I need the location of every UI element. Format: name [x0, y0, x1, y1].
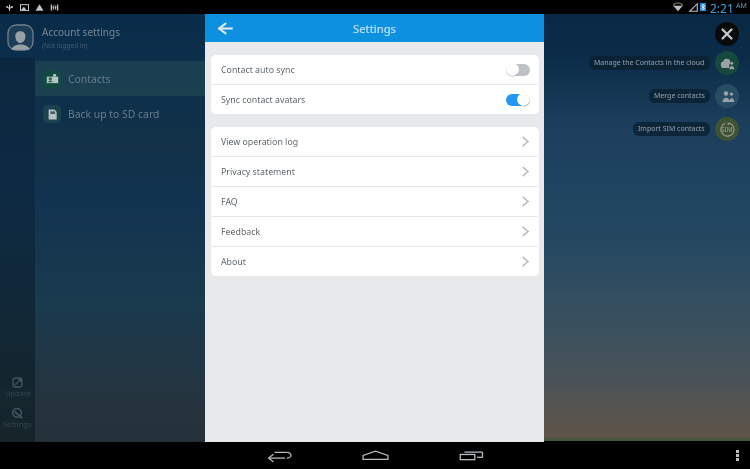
button[interactable]: Contacts — [35, 61, 205, 96]
button[interactable]: Update — [0, 377, 35, 398]
staticText: Privacy statement — [221, 166, 295, 178]
staticText: Contact auto sync — [221, 64, 295, 76]
staticText: Feedback — [221, 226, 261, 238]
staticText: Account settings — [42, 25, 120, 39]
button[interactable]: Back — [205, 14, 238, 42]
button[interactable]: More options — [724, 442, 750, 469]
staticText: Sync contact avatars — [221, 94, 306, 106]
button[interactable]: Back — [231, 442, 327, 469]
button[interactable]: Manage the Contacts in the cloud — [589, 51, 739, 75]
staticText: Import SIM contacts — [638, 124, 705, 134]
button[interactable]: Privacy statement — [211, 157, 539, 186]
button[interactable]: Settings — [0, 408, 35, 429]
button[interactable]: About — [211, 247, 539, 276]
button[interactable]: Sync contact avatars — [211, 85, 539, 114]
staticText: AM — [736, 1, 747, 11]
staticText: Settings — [353, 21, 396, 36]
staticText: SIM — [721, 125, 733, 134]
staticText: (Not logged in) — [42, 41, 88, 50]
staticText: View operation log — [221, 136, 299, 148]
button[interactable]: View operation log — [211, 127, 539, 156]
staticText: About — [221, 256, 246, 268]
button[interactable]: Home — [327, 442, 423, 469]
staticText: Update — [5, 388, 31, 398]
staticText: Manage the Contacts in the cloud — [594, 58, 705, 68]
button[interactable]: Contact auto sync — [211, 55, 539, 84]
staticText: Contacts — [68, 72, 111, 86]
button[interactable]: Merge contacts — [649, 84, 739, 108]
button[interactable]: Import SIM contacts — [633, 117, 739, 141]
button[interactable]: Account settings — [0, 14, 205, 61]
button[interactable]: Feedback — [211, 217, 539, 246]
staticText: Merge contacts — [654, 91, 705, 101]
staticText: FAQ — [221, 196, 238, 208]
button[interactable]: Close — [715, 22, 739, 46]
button[interactable]: FAQ — [211, 187, 539, 216]
staticText: Back up to SD card — [68, 107, 160, 121]
staticText: 2:21 — [710, 0, 734, 14]
staticText: Settings — [3, 419, 32, 429]
button[interactable]: Recents — [423, 442, 519, 469]
button[interactable]: Back up to SD card — [35, 96, 205, 131]
